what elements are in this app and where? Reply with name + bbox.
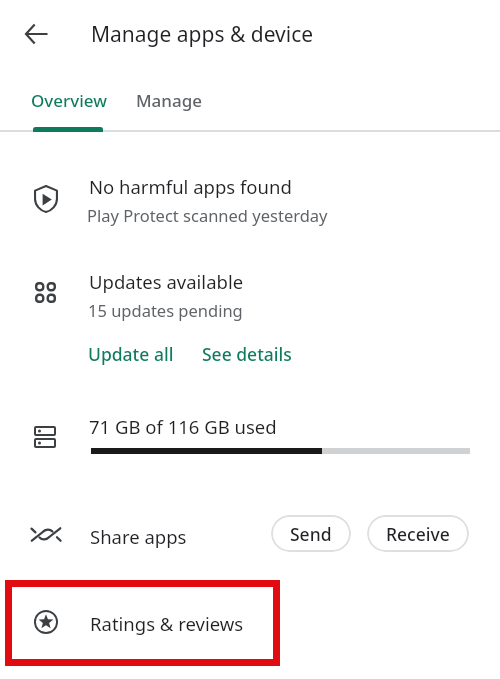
button[interactable]: Receive — [367, 515, 469, 552]
staticText: Receive — [386, 522, 450, 546]
staticText: Update all — [88, 342, 174, 366]
staticText: Send — [290, 522, 332, 546]
staticText: Manage apps & device — [91, 20, 314, 49]
button[interactable] — [193, 339, 300, 379]
staticText: Overview — [31, 89, 107, 112]
button[interactable] — [16, 78, 122, 130]
button[interactable] — [0, 595, 500, 651]
staticText: 15 updates pending — [88, 299, 243, 321]
staticText: No harmful apps found — [89, 174, 292, 199]
button[interactable]: Send — [271, 515, 351, 552]
staticText: Manage — [136, 89, 203, 112]
button[interactable] — [0, 160, 500, 240]
button[interactable]: Back — [14, 12, 58, 56]
staticText: Updates available — [89, 269, 244, 294]
staticText: Ratings & reviews — [90, 611, 244, 636]
staticText: Share apps — [90, 524, 187, 549]
button[interactable] — [80, 339, 184, 379]
staticText: Play Protect scanned yesterday — [87, 204, 328, 226]
staticText: 71 GB of 116 GB used — [89, 414, 277, 439]
button[interactable] — [122, 78, 214, 130]
staticText: See details — [202, 342, 292, 366]
